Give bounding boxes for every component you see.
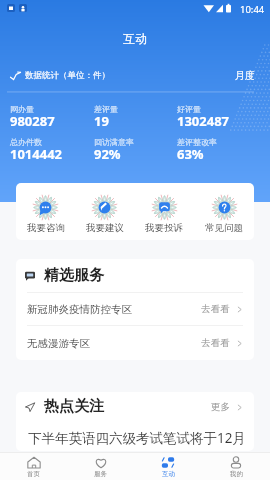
staticText: 差评整改率 <box>177 137 217 147</box>
staticText: 精选服务 <box>44 266 104 285</box>
staticText: 19 <box>94 112 109 130</box>
button[interactable]: 我要建议 <box>75 183 134 240</box>
button[interactable]: 常见问题 <box>194 183 254 240</box>
staticText: 数据统计（单位：件） <box>25 70 110 81</box>
staticText: 我的 <box>230 470 243 478</box>
button[interactable]: 更多 <box>211 401 243 413</box>
staticText: 总办件数 <box>10 137 42 147</box>
staticText: 常见问题 <box>205 222 243 234</box>
staticText: 无感漫游专区 <box>27 337 90 350</box>
button[interactable]: 我要咨询 <box>16 183 75 240</box>
staticText: 更多 <box>211 401 230 413</box>
button[interactable]: 新冠肺炎疫情防控专区 <box>16 293 254 325</box>
staticText: 网办量 <box>10 104 34 114</box>
button[interactable]: 我的 <box>202 453 270 480</box>
staticText: 月度 <box>235 69 255 82</box>
staticText: 我要建议 <box>86 222 124 234</box>
button[interactable]: 月度 <box>235 69 255 82</box>
staticText: 下半年英语四六级考试笔试将于12月 <box>28 429 246 447</box>
button[interactable]: 首页 <box>0 453 67 480</box>
staticText: 去看看 <box>201 337 230 349</box>
staticText: 我要咨询 <box>27 222 65 234</box>
staticText: 差评量 <box>94 104 118 114</box>
staticText: 63% <box>177 145 204 163</box>
staticText: 1014442 <box>10 145 63 163</box>
staticText: 互动 <box>162 470 175 478</box>
staticText: 我要投诉 <box>145 222 183 234</box>
button[interactable]: 我要投诉 <box>134 183 194 240</box>
staticText: 首页 <box>27 470 40 478</box>
staticText: 980287 <box>10 112 55 130</box>
staticText: 互动 <box>123 31 147 46</box>
staticText: 好评量 <box>177 104 201 114</box>
staticText: 新冠肺炎疫情防控专区 <box>27 303 132 316</box>
button[interactable]: 无感漫游专区 <box>16 326 254 360</box>
staticText: 10:44 <box>240 3 265 16</box>
button[interactable]: 服务 <box>67 453 134 480</box>
staticText: 92% <box>94 145 121 163</box>
button[interactable]: 互动 <box>134 453 202 480</box>
staticText: 服务 <box>94 470 107 478</box>
staticText: 热点关注 <box>44 397 104 416</box>
staticText: 去看看 <box>201 303 230 315</box>
staticText: 回访满意率 <box>94 137 134 147</box>
staticText: 1302487 <box>177 112 230 130</box>
